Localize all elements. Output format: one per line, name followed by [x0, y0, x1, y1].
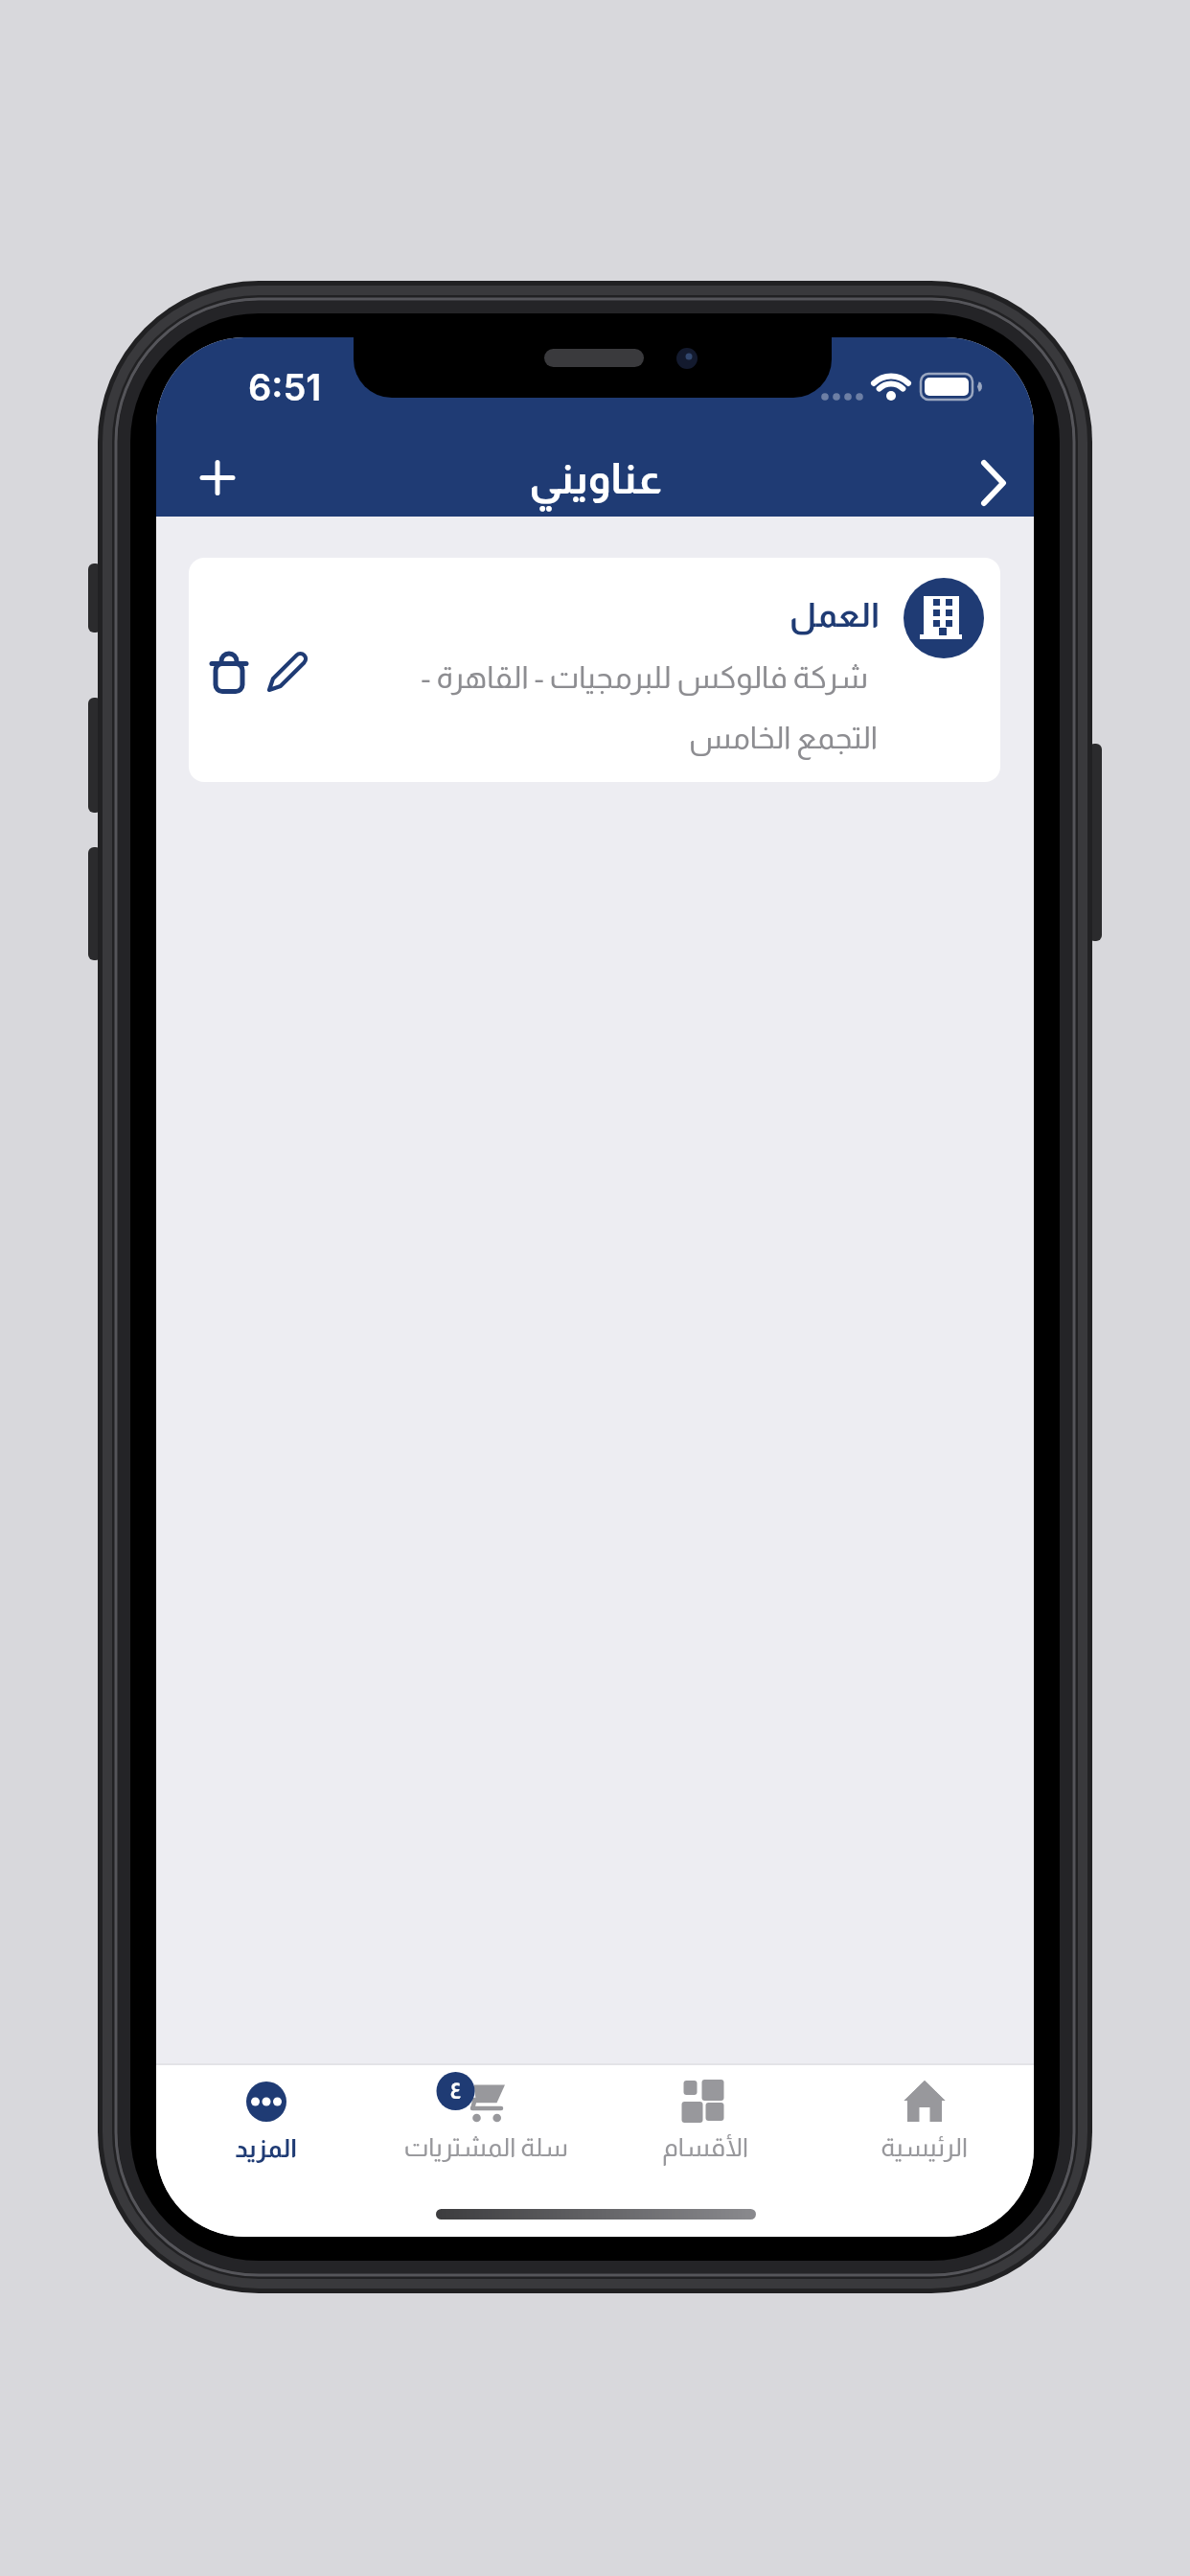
staticText: ٤: [449, 2078, 462, 2104]
staticText: شركة فالوكس للبرمجيات - القاهرة -: [421, 660, 868, 695]
staticText: 6:51: [248, 365, 322, 409]
button[interactable]: [178, 438, 257, 517]
staticText: الأقسام: [662, 2133, 748, 2162]
button[interactable]: الرئيسية: [814, 2063, 1034, 2237]
staticText: الرئيسية: [881, 2133, 968, 2162]
button[interactable]: [259, 645, 312, 699]
button[interactable]: سلة المشتريات: [376, 2063, 595, 2237]
staticText: التجمع الخامس: [688, 721, 878, 755]
button[interactable]: [202, 646, 256, 700]
button[interactable]: المزيد: [156, 2063, 376, 2237]
staticText: سلة المشتريات: [403, 2133, 568, 2162]
button[interactable]: [953, 444, 1032, 522]
button[interactable]: العمل: [189, 558, 1000, 782]
staticText: المزيد: [235, 2134, 297, 2162]
staticText: عناويني: [528, 455, 662, 502]
button[interactable]: الأقسام: [595, 2063, 814, 2237]
staticText: العمل: [789, 596, 880, 633]
